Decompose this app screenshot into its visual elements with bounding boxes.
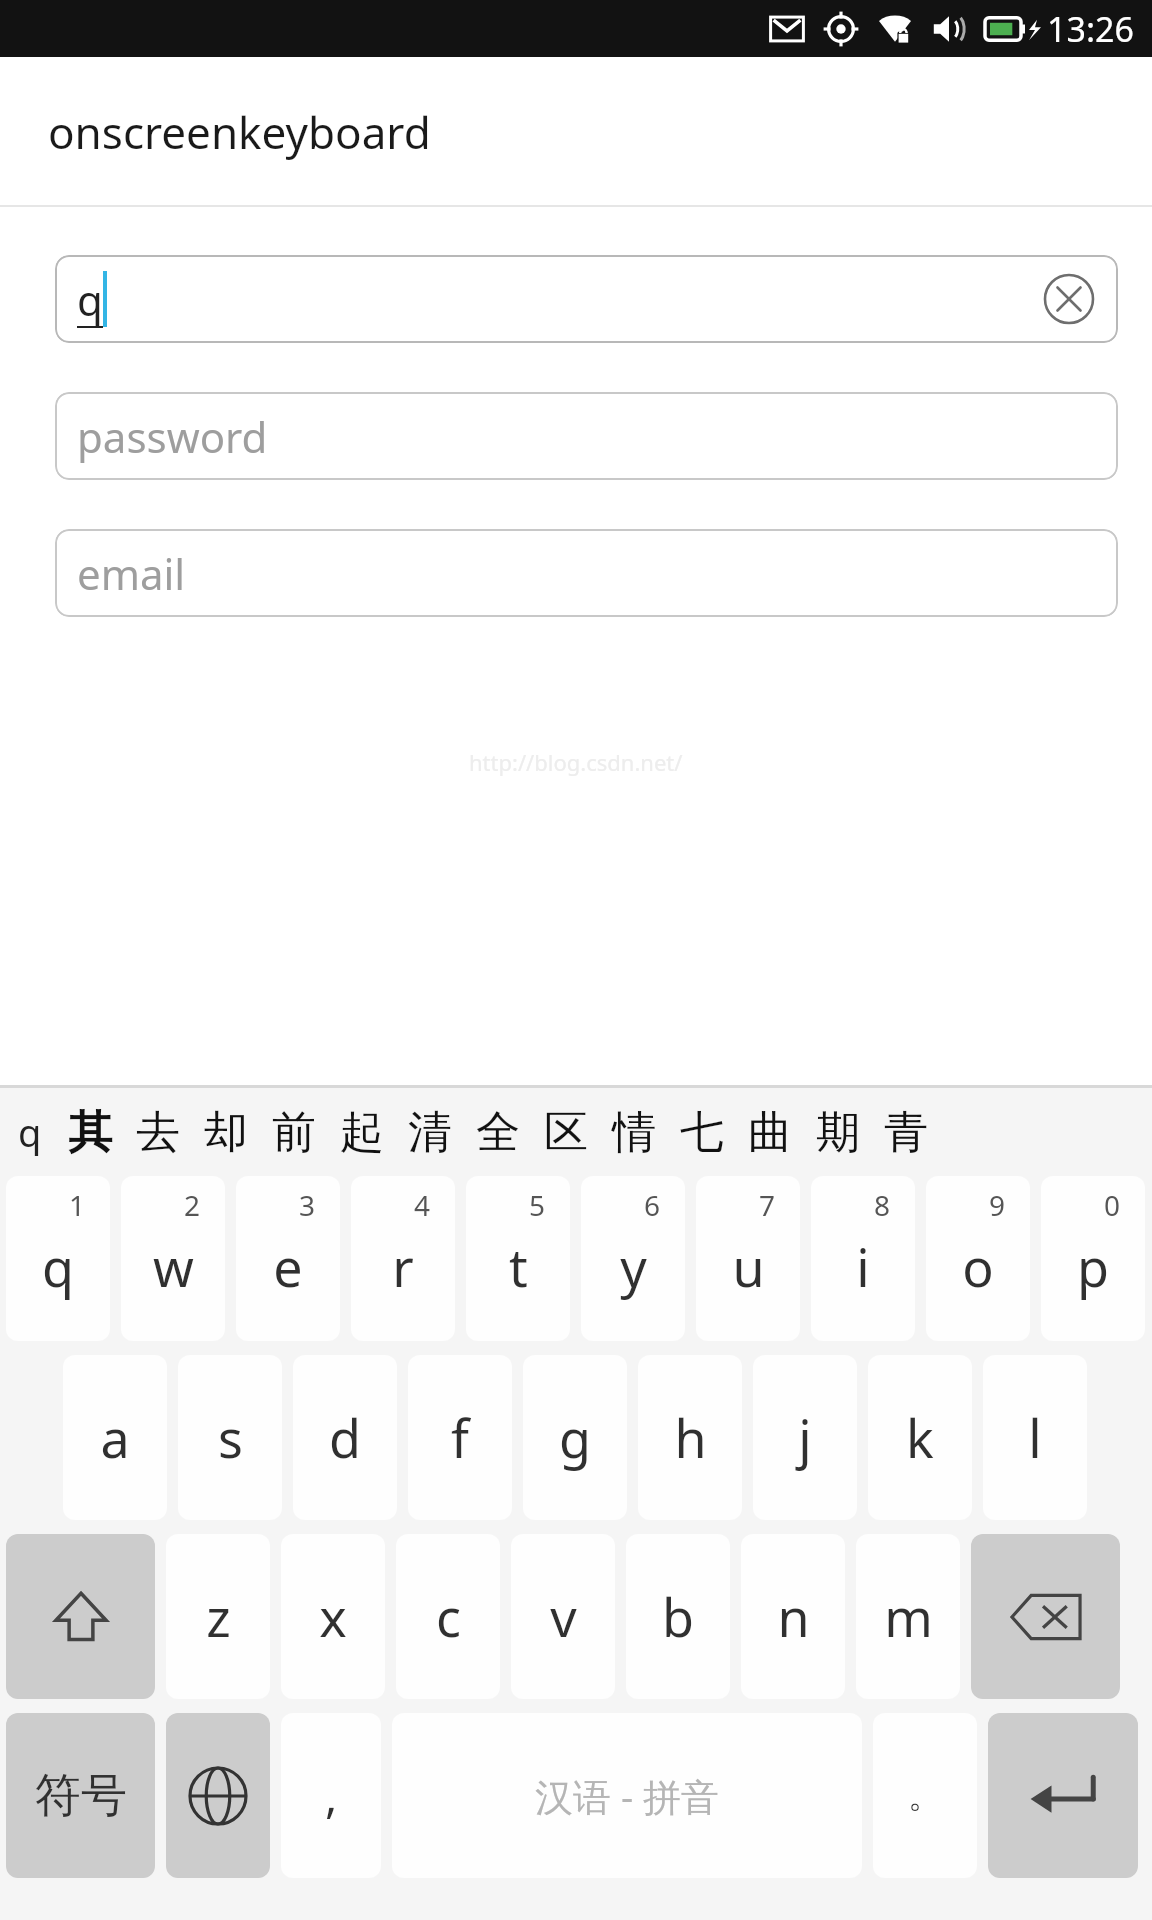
button[interactable]: x [281,1534,385,1699]
staticText: 6 [644,1186,661,1224]
staticText: a [100,1402,130,1473]
button[interactable]: 前 [272,1105,316,1160]
staticText: y [620,1231,647,1302]
button[interactable]: 清 [408,1105,452,1160]
staticText: 汉语 - 拼音 [535,1770,719,1822]
staticText: 5 [529,1186,546,1224]
button[interactable]: v [511,1534,615,1699]
button[interactable]: 3 [236,1176,340,1341]
button[interactable]: password [55,392,1118,480]
staticText: i [856,1231,870,1302]
button[interactable]: 符号 [6,1713,155,1878]
staticText: 8 [874,1186,891,1224]
button[interactable]: 曲 [748,1105,792,1160]
staticText: p [1077,1231,1109,1302]
staticText: j [798,1402,812,1473]
staticText: q [77,271,103,328]
staticText: u [732,1231,765,1302]
staticText: n [777,1581,810,1652]
button[interactable]: 8 [811,1176,915,1341]
staticText: password [77,408,268,465]
staticText: 3 [299,1186,316,1224]
button[interactable]: Backspace [971,1534,1120,1699]
staticText: 9 [989,1186,1006,1224]
button[interactable]: s [178,1355,282,1520]
button[interactable]: f [408,1355,512,1520]
button[interactable]: 青 [884,1105,928,1160]
staticText: h [674,1402,707,1473]
button[interactable]: z [166,1534,270,1699]
button[interactable]: 6 [581,1176,685,1341]
staticText: m [884,1581,933,1652]
staticText: w [153,1231,194,1302]
staticText: email [77,545,186,602]
button[interactable]: q [18,1106,42,1158]
staticText: r [392,1231,414,1302]
staticText: s [218,1402,243,1473]
button[interactable]: email [55,529,1118,617]
staticText: f [451,1402,469,1473]
staticText: g [559,1402,591,1473]
button[interactable]: Clear text [1032,262,1106,336]
button[interactable]: 7 [696,1176,800,1341]
staticText: 符号 [35,1767,127,1825]
staticText: onscreenkeyboard [48,102,431,162]
button[interactable]: 区 [544,1105,588,1160]
button[interactable]: 却 [204,1105,248,1160]
staticText: z [206,1581,231,1652]
staticText: http://blog.csdn.net/ [469,747,683,777]
button[interactable]: , [281,1713,381,1878]
button[interactable]: j [753,1355,857,1520]
button[interactable]: 。 [873,1713,977,1878]
button[interactable]: Switch language [166,1713,270,1878]
staticText: , [325,1764,338,1827]
staticText: o [962,1231,994,1302]
button[interactable]: Enter [988,1713,1138,1878]
button[interactable]: 5 [466,1176,570,1341]
staticText: 2 [184,1186,201,1224]
staticText: b [662,1581,694,1652]
staticText: 0 [1104,1186,1121,1224]
staticText: t [509,1231,528,1302]
staticText: l [1028,1402,1042,1473]
button[interactable]: 全 [476,1105,520,1160]
staticText: c [436,1581,461,1652]
button[interactable]: 1 [6,1176,110,1341]
button[interactable]: a [63,1355,167,1520]
button[interactable]: k [868,1355,972,1520]
button[interactable]: Shift [6,1534,155,1699]
button[interactable]: 其 [68,1105,112,1160]
staticText: 13:26 [1047,6,1134,52]
button[interactable]: l [983,1355,1087,1520]
button[interactable]: 0 [1041,1176,1145,1341]
button[interactable]: d [293,1355,397,1520]
button[interactable]: q [55,255,1118,343]
button[interactable]: n [741,1534,845,1699]
staticText: 4 [414,1186,431,1224]
button[interactable]: b [626,1534,730,1699]
button[interactable]: c [396,1534,500,1699]
button[interactable]: h [638,1355,742,1520]
button[interactable]: 去 [136,1105,180,1160]
staticText: v [550,1581,577,1652]
staticText: x [319,1581,347,1652]
staticText: k [906,1402,934,1473]
button[interactable]: m [856,1534,960,1699]
button[interactable]: 起 [340,1105,384,1160]
staticText: 7 [759,1186,776,1224]
button[interactable]: 9 [926,1176,1030,1341]
button[interactable]: 七 [680,1105,724,1160]
staticText: 1 [69,1186,86,1224]
button[interactable]: 汉语 - 拼音 [392,1713,862,1878]
button[interactable]: g [523,1355,627,1520]
staticText: 。 [908,1774,942,1817]
staticText: d [329,1402,361,1473]
button[interactable]: 期 [816,1105,860,1160]
staticText: e [273,1231,303,1302]
button[interactable]: 情 [612,1105,656,1160]
staticText: q [42,1231,74,1302]
button[interactable]: 4 [351,1176,455,1341]
button[interactable]: 2 [121,1176,225,1341]
